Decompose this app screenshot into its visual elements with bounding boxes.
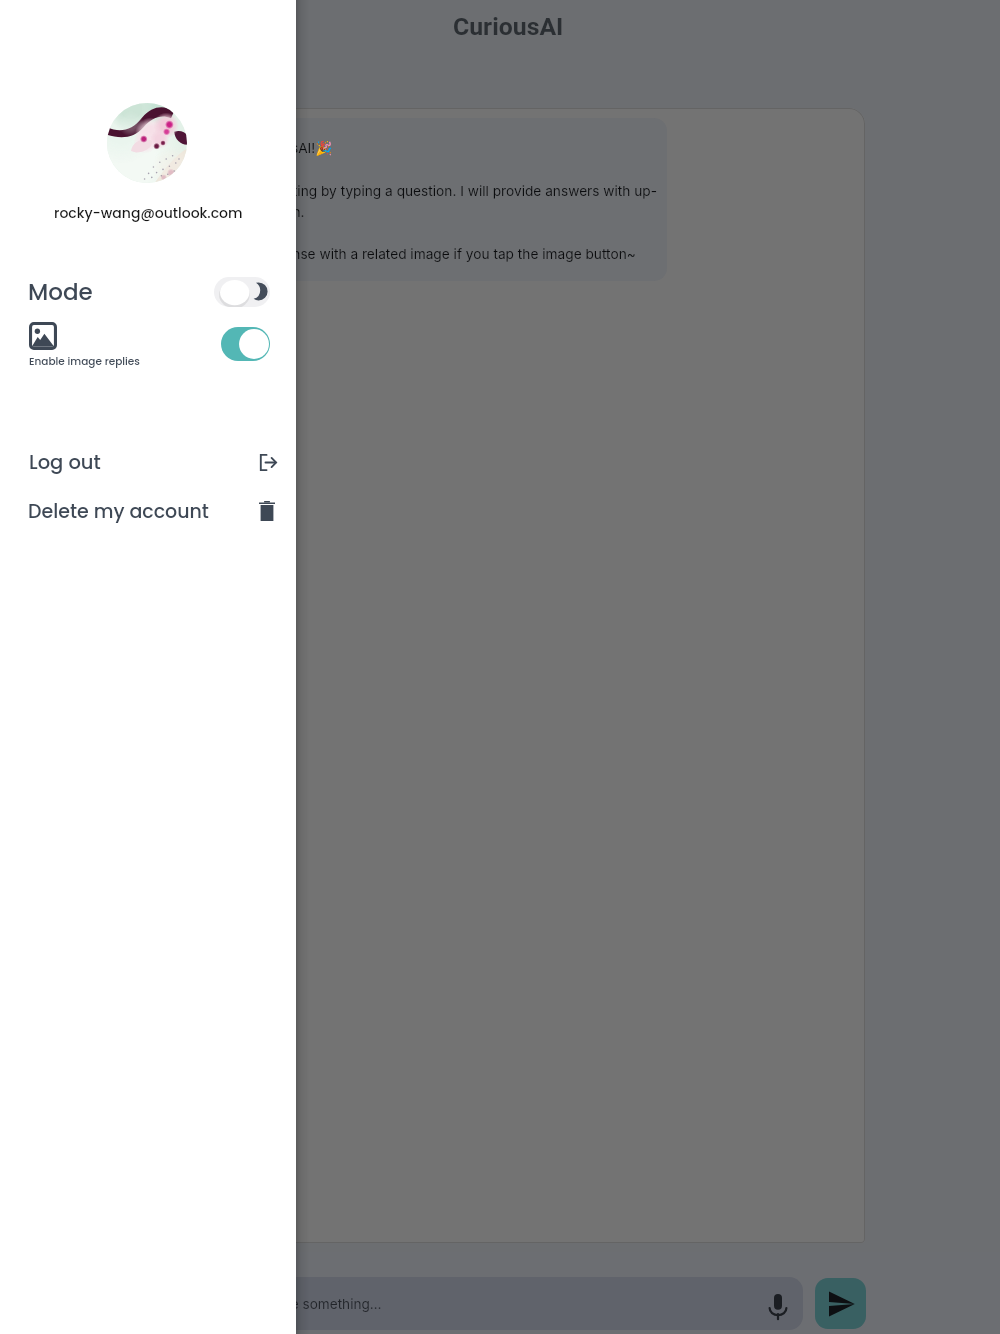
staticText: rocky-wang@outlook.com: [54, 203, 243, 223]
button[interactable]: Mode: [0, 272, 296, 312]
staticText: CuriousAI: [453, 12, 564, 41]
staticText: Ask me something…: [251, 1296, 382, 1312]
staticText: Hello! I am CuriousAI!🎉 You can start ch…: [176, 140, 658, 262]
button[interactable]: Send: [815, 1278, 866, 1329]
staticText: Delete my account: [28, 498, 209, 525]
staticText: Log out: [29, 449, 101, 476]
button[interactable]: Toggle dark mode: [214, 277, 270, 307]
other: Voice input: [768, 1293, 788, 1320]
button[interactable]: Delete my account: [0, 492, 296, 530]
staticText: Enable image replies: [29, 354, 140, 369]
button[interactable]: Enable image replies: [22, 316, 147, 373]
staticText: Mode: [28, 276, 93, 308]
button[interactable]: Log out: [0, 443, 296, 481]
button[interactable]: Enable image replies: [221, 327, 270, 361]
button[interactable]: Ask me something…: [120, 1277, 803, 1330]
